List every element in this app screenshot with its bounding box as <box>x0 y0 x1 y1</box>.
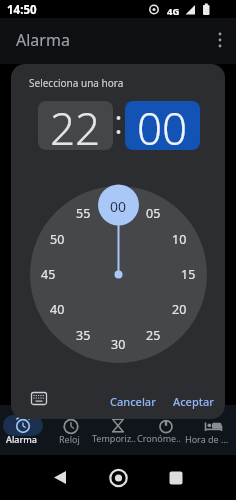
button[interactable]: 45 <box>36 266 60 282</box>
button[interactable]: 10 <box>167 231 191 247</box>
staticText: 4G <box>167 5 180 18</box>
staticText: 50 <box>50 231 65 247</box>
staticText: Alarma <box>6 433 37 445</box>
button[interactable]: 30 <box>106 336 130 352</box>
button[interactable] <box>48 465 72 489</box>
staticText: 20 <box>172 301 187 317</box>
button[interactable] <box>95 405 141 455</box>
button[interactable]: 15 <box>176 266 200 282</box>
staticText: Temporiz... <box>92 432 136 446</box>
button[interactable]: 25 <box>141 327 165 343</box>
staticText: 55 <box>76 205 91 221</box>
staticText: Hora de ... <box>185 433 229 445</box>
button[interactable]: 55 <box>71 205 95 221</box>
button[interactable]: 20 <box>167 301 191 317</box>
button[interactable] <box>164 465 188 489</box>
button[interactable] <box>143 405 189 455</box>
staticText: Reloj <box>59 433 80 445</box>
button[interactable]: Cancelar <box>101 389 165 413</box>
button[interactable]: 35 <box>71 327 95 343</box>
button[interactable]: 50 <box>45 231 69 247</box>
button[interactable]: 05 <box>141 205 165 221</box>
button[interactable]: 22 <box>38 101 113 150</box>
button[interactable] <box>31 392 47 405</box>
button[interactable]: Aceptar <box>162 389 224 413</box>
staticText: 25 <box>146 327 161 343</box>
staticText: 00 <box>110 197 127 213</box>
staticText: 30 <box>111 336 126 352</box>
staticText: Aceptar <box>173 394 214 409</box>
button[interactable] <box>48 405 94 455</box>
staticText: 14:50 <box>7 2 37 18</box>
staticText: 00 <box>137 101 188 147</box>
button[interactable] <box>214 30 226 52</box>
staticText: 40 <box>50 301 65 317</box>
staticText: Selecciona una hora <box>29 76 124 90</box>
staticText: Cronóme... <box>137 432 183 446</box>
button[interactable]: 00 <box>106 197 130 213</box>
button[interactable]: 40 <box>45 301 69 317</box>
button[interactable] <box>0 405 46 455</box>
staticText: 35 <box>76 327 91 343</box>
staticText: Cancelar <box>110 394 156 409</box>
button[interactable] <box>190 405 236 455</box>
staticText: 10 <box>172 231 187 247</box>
staticText: 15 <box>181 266 196 282</box>
staticText: 22 <box>50 101 101 147</box>
button[interactable] <box>106 465 131 490</box>
button[interactable]: 00 <box>125 101 200 150</box>
staticText: 45 <box>41 266 56 282</box>
staticText: Alarma <box>16 29 70 51</box>
staticText: 05 <box>146 205 161 221</box>
